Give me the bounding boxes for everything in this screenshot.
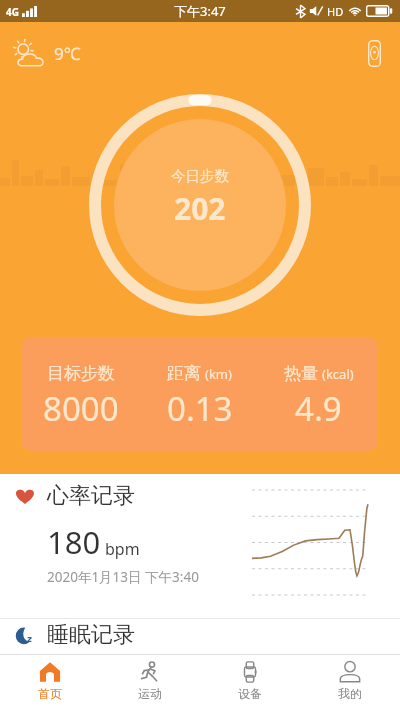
staticText: (kcal): [322, 365, 354, 383]
staticText: 距离: [167, 363, 201, 384]
button[interactable]: 我的: [300, 655, 400, 711]
staticText: 目标步数: [47, 363, 115, 384]
button[interactable]: 设备: [200, 655, 300, 711]
button[interactable]: Connected device: [354, 33, 394, 73]
staticText: 设备: [238, 686, 262, 701]
staticText: (km): [205, 365, 232, 383]
staticText: 我的: [338, 686, 362, 701]
staticText: 运动: [138, 686, 162, 701]
staticText: 热量: [284, 363, 318, 384]
button[interactable]: 心率记录: [0, 474, 400, 619]
staticText: 202: [174, 188, 226, 229]
staticText: 2020年1月13日 下午3:40: [47, 568, 199, 586]
staticText: 8000: [43, 386, 119, 431]
button[interactable]: 首页: [0, 655, 100, 711]
staticText: 9℃: [54, 42, 81, 65]
staticText: 4G: [6, 5, 19, 19]
staticText: 4.9: [295, 386, 342, 431]
staticText: 首页: [38, 686, 62, 701]
staticText: 心率记录: [47, 482, 135, 510]
staticText: 0.13: [167, 386, 233, 431]
button[interactable]: 目标步数: [21, 337, 378, 451]
button[interactable]: 睡眠记录: [0, 619, 400, 654]
staticText: 睡眠记录: [47, 621, 135, 649]
staticText: 今日步数: [171, 167, 229, 185]
staticText: HD: [327, 4, 344, 19]
staticText: 下午3:47: [174, 2, 226, 20]
staticText: 180: [47, 521, 101, 563]
button[interactable]: 运动: [100, 655, 200, 711]
staticText: bpm: [105, 538, 140, 560]
